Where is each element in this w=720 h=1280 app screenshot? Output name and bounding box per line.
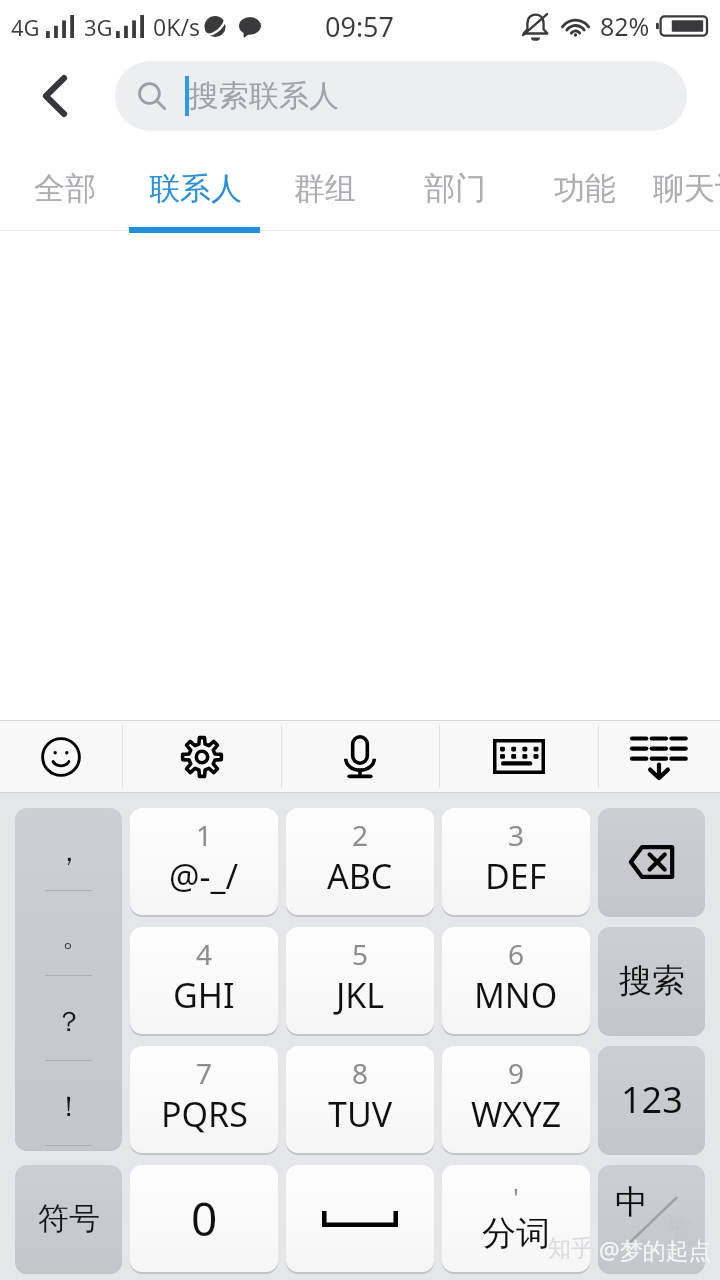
staticText: @-_/ bbox=[169, 853, 239, 899]
button[interactable]: 联系人 bbox=[130, 140, 260, 233]
staticText: 部门 bbox=[424, 169, 486, 208]
button[interactable]: 0 bbox=[130, 1165, 278, 1272]
button[interactable]: 搜索联系人 bbox=[115, 61, 687, 131]
button[interactable]: 123 bbox=[598, 1046, 705, 1153]
staticText: 分词 bbox=[482, 1212, 550, 1255]
button[interactable]: 部门 bbox=[390, 140, 520, 233]
staticText: ' bbox=[513, 1179, 519, 1214]
staticText: 1 bbox=[196, 816, 213, 854]
button[interactable]: 聊天记录 bbox=[650, 140, 720, 233]
button[interactable]: 2 bbox=[286, 808, 434, 915]
button[interactable]: 8 bbox=[286, 1046, 434, 1153]
staticText: 英 bbox=[663, 1214, 692, 1251]
button[interactable]: 5 bbox=[286, 927, 434, 1034]
button[interactable] bbox=[286, 1165, 434, 1272]
other: Backspace bbox=[628, 845, 675, 879]
staticText: 符号 bbox=[38, 1199, 100, 1238]
button[interactable]: Settings bbox=[122, 721, 281, 792]
staticText: PQRS bbox=[161, 1091, 248, 1137]
button[interactable]: 全部 bbox=[0, 140, 130, 233]
button[interactable]: 1 bbox=[130, 808, 278, 915]
staticText: DEF bbox=[485, 853, 547, 899]
staticText: TUV bbox=[328, 1091, 393, 1137]
staticText: 联系人 bbox=[149, 169, 242, 208]
staticText: 09:57 bbox=[325, 8, 395, 45]
staticText: 9 bbox=[508, 1054, 525, 1092]
staticText: 6 bbox=[508, 935, 525, 973]
staticText: ABC bbox=[327, 853, 393, 899]
staticText: 82% bbox=[600, 9, 650, 43]
staticText: 5 bbox=[352, 935, 369, 973]
staticText: @梦的起点 bbox=[599, 1234, 712, 1265]
button[interactable]: Keyboard layout bbox=[439, 721, 598, 792]
staticText: 群组 bbox=[294, 169, 356, 208]
button[interactable]: Voice input bbox=[281, 721, 439, 792]
button[interactable]: Back bbox=[23, 64, 87, 128]
button[interactable]: 4 bbox=[130, 927, 278, 1034]
button[interactable]: 中 bbox=[598, 1165, 705, 1272]
button[interactable]: 7 bbox=[130, 1046, 278, 1153]
staticText: 123 bbox=[621, 1075, 683, 1124]
button[interactable]: 搜索 bbox=[598, 927, 705, 1034]
staticText: 中 bbox=[615, 1181, 648, 1223]
staticText: 知乎 bbox=[548, 1234, 594, 1263]
button[interactable]: ' bbox=[442, 1165, 590, 1272]
staticText: 全部 bbox=[34, 169, 96, 208]
staticText: 搜索联系人 bbox=[189, 77, 339, 115]
staticText: ！ bbox=[55, 1089, 83, 1124]
staticText: 0K/s bbox=[153, 11, 200, 42]
staticText: ， bbox=[55, 834, 83, 869]
staticText: ？ bbox=[55, 1004, 83, 1039]
staticText: WXYZ bbox=[471, 1091, 562, 1137]
button[interactable]: Backspace bbox=[598, 808, 705, 915]
staticText: 聊天记录 bbox=[653, 169, 720, 208]
staticText: 3 bbox=[508, 816, 525, 854]
staticText: JKL bbox=[336, 972, 385, 1018]
staticText: GHI bbox=[173, 972, 235, 1018]
button[interactable]: 9 bbox=[442, 1046, 590, 1153]
button[interactable]: 3 bbox=[442, 808, 590, 915]
staticText: 0 bbox=[191, 1187, 218, 1250]
button[interactable]: Emoji bbox=[0, 721, 122, 792]
staticText: 8 bbox=[352, 1054, 369, 1092]
staticText: MNO bbox=[474, 972, 558, 1018]
staticText: 4G bbox=[11, 12, 40, 42]
button[interactable]: Hide keyboard bbox=[598, 721, 720, 792]
button[interactable]: 符号 bbox=[15, 1165, 122, 1272]
button[interactable]: 6 bbox=[442, 927, 590, 1034]
staticText: 搜索 bbox=[619, 960, 685, 1002]
staticText: 功能 bbox=[554, 169, 616, 208]
staticText: 。 bbox=[62, 919, 90, 954]
staticText: 7 bbox=[196, 1054, 213, 1092]
staticText: 2 bbox=[352, 816, 369, 854]
staticText: 4 bbox=[196, 935, 213, 973]
staticText: 3G bbox=[84, 12, 113, 42]
button[interactable]: 群组 bbox=[260, 140, 390, 233]
button[interactable]: ， bbox=[15, 808, 122, 1149]
button[interactable]: 功能 bbox=[520, 140, 650, 233]
